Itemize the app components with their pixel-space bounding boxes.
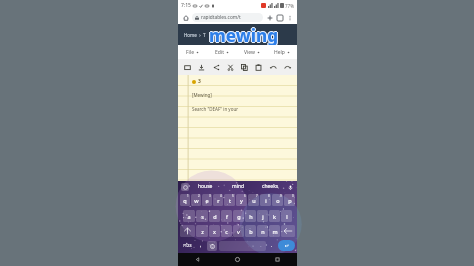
button[interactable]: h	[245, 210, 256, 222]
button[interactable]: cheeks	[254, 181, 286, 192]
staticText: h	[249, 213, 253, 220]
button[interactable]: Help	[267, 45, 297, 59]
button[interactable]: e	[202, 194, 212, 206]
button[interactable]: rapidtables.com/t	[192, 13, 263, 22]
staticText: 3	[198, 78, 201, 85]
button[interactable]: d	[209, 210, 220, 222]
button[interactable]: u	[248, 194, 259, 206]
staticText: c	[225, 228, 228, 235]
staticText: b	[249, 228, 253, 235]
staticText: t	[229, 197, 231, 204]
button[interactable]: f	[221, 210, 232, 222]
staticText: [Mewing]	[192, 92, 212, 98]
staticText: f	[226, 213, 228, 220]
staticText: Home › T	[184, 32, 206, 38]
staticText: i	[265, 197, 267, 204]
button[interactable]: q	[180, 194, 190, 206]
button[interactable]: z	[196, 225, 208, 237]
button[interactable]: Space	[219, 241, 266, 251]
button[interactable]: Tabs	[275, 13, 284, 22]
staticText: mind	[232, 183, 245, 190]
button[interactable]: k	[269, 210, 280, 222]
staticText: 0	[292, 194, 294, 198]
staticText: mewing	[210, 24, 280, 45]
staticText: e	[205, 197, 209, 204]
button[interactable]: Home › T	[184, 32, 206, 38]
staticText: q	[183, 197, 187, 204]
button[interactable]: Recents	[257, 253, 297, 266]
staticText: 77%	[285, 3, 294, 9]
button[interactable]: p	[284, 194, 295, 206]
button[interactable]: c	[221, 225, 232, 237]
button[interactable]: Keyboard menu	[181, 183, 189, 191]
button[interactable]: j	[257, 210, 268, 222]
staticText: ,	[200, 242, 202, 249]
button[interactable]: Save	[196, 62, 207, 73]
staticText: 6	[244, 194, 246, 198]
button[interactable]: Shift	[180, 225, 195, 237]
button[interactable]: a	[183, 210, 195, 222]
button[interactable]: n	[257, 225, 268, 237]
button[interactable]: Enter	[278, 240, 295, 251]
staticText: 3	[209, 194, 211, 198]
staticText: y	[240, 197, 243, 204]
button[interactable]: house	[189, 181, 222, 192]
button[interactable]: Cut	[225, 62, 236, 73]
staticText: Edit	[215, 49, 224, 56]
button[interactable]: ,	[197, 239, 205, 252]
button[interactable]: s	[196, 210, 208, 222]
button[interactable]: g	[233, 210, 244, 222]
button[interactable]: t	[224, 194, 235, 206]
staticText: mewing	[209, 23, 279, 44]
button[interactable]: o	[272, 194, 283, 206]
button[interactable]: y	[236, 194, 247, 206]
button[interactable]: r	[213, 194, 223, 206]
button[interactable]: New	[182, 62, 193, 73]
button[interactable]: Emoji	[207, 241, 217, 251]
staticText: rapidtables.com/t	[201, 14, 241, 21]
button[interactable]: Copy	[239, 62, 250, 73]
button[interactable]: View	[237, 45, 267, 59]
staticText: m	[272, 228, 278, 235]
staticText: s	[201, 213, 204, 220]
button[interactable]: More options	[285, 13, 294, 22]
button[interactable]: Back	[178, 253, 217, 266]
button[interactable]: Backspace	[281, 225, 295, 237]
button[interactable]: w	[191, 194, 201, 206]
button[interactable]: v	[233, 225, 244, 237]
staticText: r	[217, 197, 220, 204]
button[interactable]: File	[178, 45, 207, 59]
button[interactable]: Undo	[268, 62, 279, 73]
staticText: g	[237, 213, 241, 220]
button[interactable]: Edit	[207, 45, 237, 59]
staticText: mewing	[208, 24, 278, 45]
staticText: File	[186, 49, 194, 56]
button[interactable]: .	[268, 239, 276, 252]
staticText: z	[201, 228, 204, 235]
staticText: .	[271, 242, 273, 249]
staticText: x	[213, 228, 216, 235]
button[interactable]: x	[209, 225, 220, 237]
button[interactable]: Paste	[253, 62, 264, 73]
staticText: 4	[220, 194, 222, 198]
button[interactable]: Share	[211, 62, 222, 73]
button[interactable]: i	[260, 194, 271, 206]
button[interactable]: Home	[181, 13, 190, 22]
staticText: 5	[232, 194, 234, 198]
staticText: n	[261, 228, 265, 235]
staticText: mewing	[209, 25, 279, 46]
staticText: 1	[187, 194, 189, 198]
button[interactable]: ?123	[180, 239, 195, 252]
button[interactable]: l	[281, 210, 292, 222]
button[interactable]: mind	[222, 181, 254, 192]
staticText: w	[194, 197, 199, 204]
button[interactable]: b	[245, 225, 256, 237]
button[interactable]: m	[269, 225, 280, 237]
button[interactable]: Voice input	[286, 183, 294, 191]
staticText: 7	[256, 194, 258, 198]
button[interactable]: New tab	[265, 13, 274, 22]
button[interactable]: Home	[217, 253, 257, 266]
button[interactable]: 3	[178, 75, 297, 181]
button[interactable]: Redo	[282, 62, 293, 73]
staticText: 9	[280, 194, 282, 198]
